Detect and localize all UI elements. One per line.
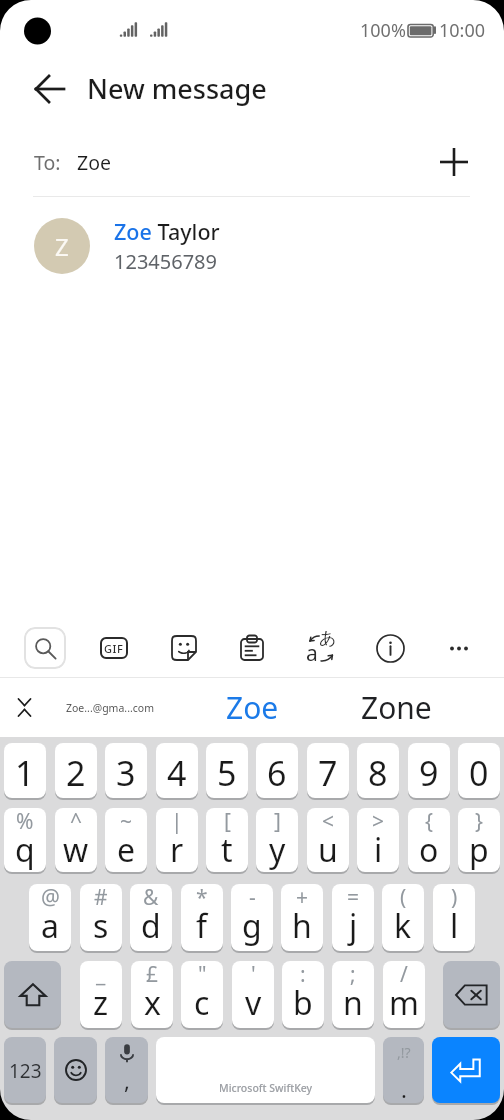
button[interactable]: <: [307, 808, 349, 872]
button[interactable]: :: [282, 961, 324, 1028]
staticText: Zoe: [114, 217, 152, 246]
button[interactable]: 9: [408, 743, 450, 798]
button[interactable]: %: [4, 808, 46, 872]
staticText: k: [394, 904, 412, 948]
staticText: a: [41, 904, 59, 948]
button[interactable]: 4: [156, 743, 198, 798]
button[interactable]: ,!?: [383, 1037, 424, 1103]
button[interactable]: &: [130, 884, 172, 951]
staticText: >: [372, 808, 385, 836]
button[interactable]: Stickers: [163, 627, 205, 669]
staticText: {: [425, 808, 433, 836]
staticText: e: [117, 828, 136, 872]
staticText: [: [224, 808, 231, 836]
button[interactable]: @: [29, 884, 71, 951]
button[interactable]: 7: [307, 743, 349, 798]
button[interactable]: ": [181, 961, 223, 1028]
button[interactable]: ): [433, 884, 475, 951]
button[interactable]: Back: [28, 67, 72, 111]
staticText: t: [221, 828, 233, 872]
button[interactable]: >: [357, 808, 399, 872]
staticText: 8: [368, 750, 388, 796]
staticText: New message: [87, 70, 267, 107]
button[interactable]: 8: [357, 743, 399, 798]
staticText: Zoe: [226, 687, 279, 728]
button[interactable]: Collapse toolbar: [2, 678, 46, 737]
button[interactable]: [: [206, 808, 248, 872]
staticText: Z: [55, 230, 69, 263]
button[interactable]: 5: [206, 743, 248, 798]
button[interactable]: -: [231, 884, 273, 951]
staticText: 1: [15, 750, 35, 796]
staticText: v: [245, 981, 262, 1025]
staticText: }: [475, 808, 483, 836]
staticText: s: [93, 904, 109, 948]
staticText: a: [306, 639, 318, 668]
button[interactable]: 0: [458, 743, 500, 798]
button[interactable]: |: [156, 808, 198, 872]
staticText: l: [450, 904, 459, 948]
staticText: Zoe...@gma...com: [66, 701, 154, 715]
button[interactable]: #: [80, 884, 122, 951]
button[interactable]: £: [131, 961, 173, 1028]
button[interactable]: 2: [55, 743, 97, 798]
staticText: ^: [70, 808, 83, 836]
button[interactable]: 1: [4, 743, 46, 798]
button[interactable]: ;: [332, 961, 374, 1028]
button[interactable]: Clipboard: [231, 627, 273, 669]
button[interactable]: =: [332, 884, 374, 951]
staticText: o: [419, 828, 439, 872]
button[interactable]: (: [382, 884, 424, 951]
button[interactable]: Enter: [432, 1037, 500, 1103]
button[interactable]: Translate: [300, 627, 342, 669]
button[interactable]: Voice input: [105, 1037, 148, 1103]
button[interactable]: Zoe...@gma...com: [55, 678, 165, 737]
staticText: *: [196, 884, 208, 912]
button[interactable]: *: [181, 884, 223, 951]
staticText: @: [41, 884, 60, 912]
button[interactable]: 6: [256, 743, 298, 798]
button[interactable]: {: [408, 808, 450, 872]
staticText: To:: [34, 149, 61, 176]
button[interactable]: More options: [438, 627, 480, 669]
staticText: +: [296, 884, 309, 912]
button[interactable]: ~: [105, 808, 147, 872]
staticText: ): [451, 884, 458, 912]
staticText: #: [94, 884, 108, 912]
button[interactable]: Backspace: [443, 961, 500, 1028]
button[interactable]: 123: [4, 1037, 46, 1103]
staticText: Zoe: [77, 149, 111, 176]
staticText: %: [16, 808, 34, 836]
button[interactable]: Zone: [331, 678, 461, 737]
staticText: 7: [318, 750, 338, 796]
staticText: 3: [116, 750, 136, 796]
staticText: あ: [319, 628, 337, 649]
button[interactable]: ]: [256, 808, 298, 872]
staticText: f: [196, 904, 208, 948]
button[interactable]: Add recipient: [430, 138, 478, 186]
staticText: ~: [120, 808, 133, 836]
button[interactable]: GIF: [93, 627, 135, 669]
button[interactable]: +: [281, 884, 323, 951]
button[interactable]: 3: [105, 743, 147, 798]
staticText: 123456789: [114, 248, 217, 275]
button[interactable]: Emoji: [54, 1037, 97, 1103]
staticText: j: [349, 904, 358, 948]
button[interactable]: /: [383, 961, 425, 1028]
staticText: z: [93, 981, 109, 1025]
button[interactable]: Shift: [4, 961, 61, 1028]
button[interactable]: ^: [55, 808, 97, 872]
button[interactable]: ': [232, 961, 274, 1028]
button[interactable]: Zoe: [187, 678, 317, 737]
staticText: b: [293, 981, 313, 1025]
button[interactable]: Info: [369, 627, 411, 669]
button[interactable]: }: [458, 808, 500, 872]
staticText: n: [343, 981, 363, 1025]
staticText: |: [171, 808, 183, 836]
button[interactable]: Search: [24, 627, 66, 669]
button[interactable]: Microsoft SwiftKey: [156, 1037, 375, 1103]
staticText: _: [96, 961, 106, 989]
staticText: ]: [274, 808, 281, 836]
button[interactable]: _: [80, 961, 122, 1028]
button[interactable]: Z: [0, 206, 504, 286]
